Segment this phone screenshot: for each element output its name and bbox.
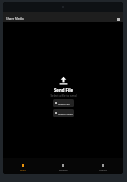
staticText: Send File (54, 87, 74, 93)
staticText: History (99, 168, 108, 171)
staticText: Select Folder (58, 112, 74, 115)
staticText: Receive (59, 168, 68, 171)
button[interactable]: Send (3, 161, 43, 171)
button[interactable]: Receive (43, 161, 83, 171)
staticText: Select a file to send (50, 94, 77, 98)
button[interactable]: Select Folder (53, 109, 74, 117)
button[interactable]: Select File (53, 99, 74, 107)
button[interactable]: History (83, 161, 123, 171)
staticText: Share Media (6, 17, 24, 21)
staticText: Send (20, 168, 26, 171)
button[interactable]: More options (115, 13, 123, 21)
staticText: Select File (58, 102, 70, 105)
